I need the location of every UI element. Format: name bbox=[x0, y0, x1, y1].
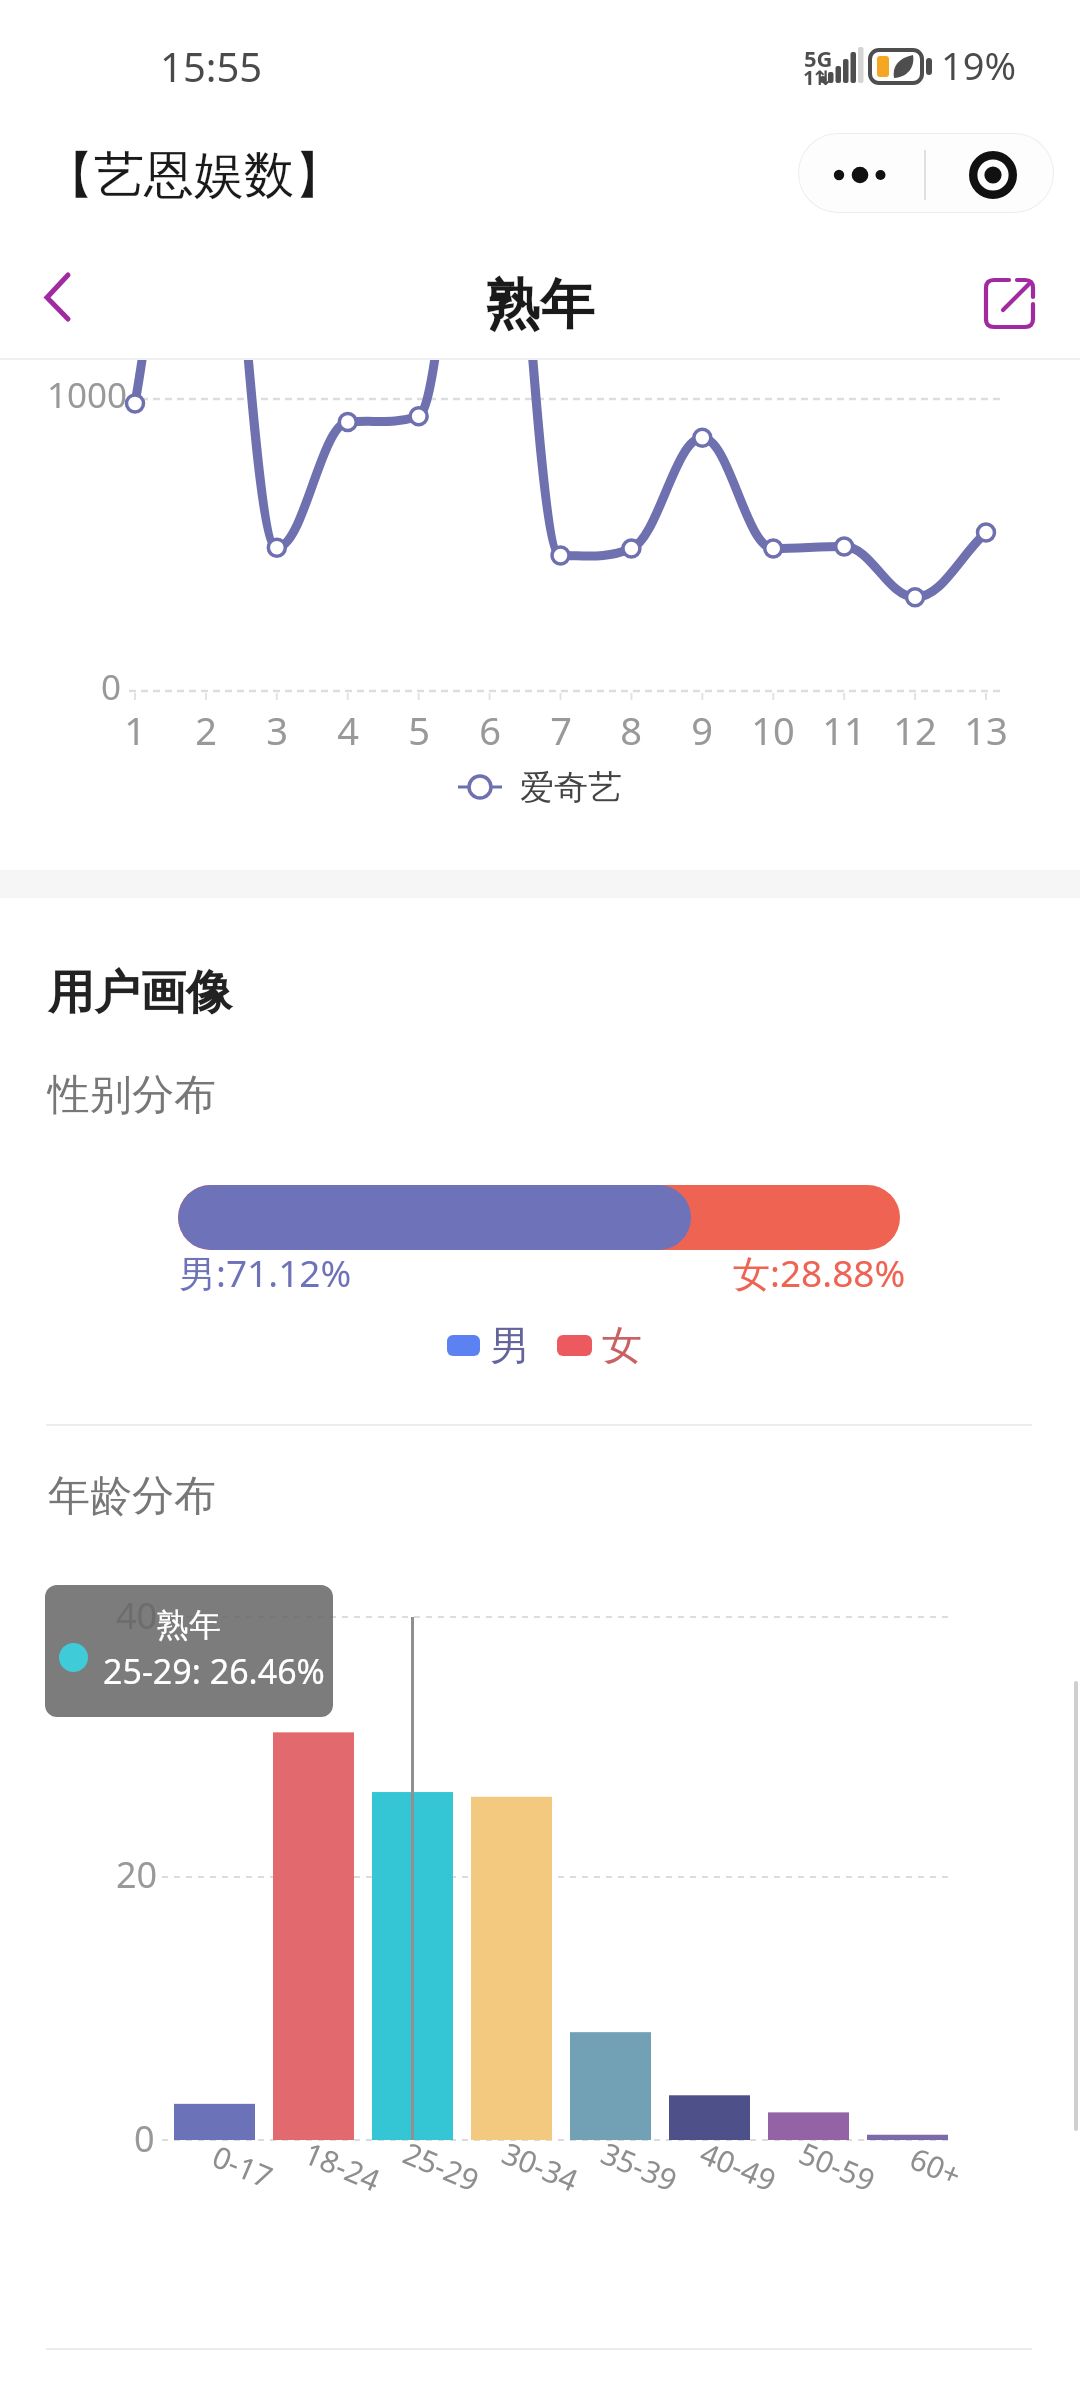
staticText: 20 bbox=[116, 1850, 158, 1899]
staticText: 0 bbox=[134, 2114, 155, 2163]
staticText: 女:28.88% bbox=[733, 1247, 906, 1298]
staticText: 25-29 bbox=[397, 2132, 486, 2201]
staticText: 2 bbox=[166, 704, 246, 756]
staticText: 1 bbox=[95, 704, 175, 756]
button[interactable]: 男 bbox=[447, 1320, 642, 1370]
staticText: 女 bbox=[602, 1320, 642, 1370]
staticText: 男:71.12% bbox=[179, 1247, 352, 1298]
staticText: 3 bbox=[237, 704, 317, 756]
staticText: 30-34 bbox=[496, 2132, 585, 2201]
staticText: 8 bbox=[591, 704, 671, 756]
staticText: 50-59 bbox=[793, 2132, 882, 2201]
staticText: 4 bbox=[308, 704, 388, 756]
staticText: 1⇅ bbox=[803, 64, 832, 91]
staticText: 0-17 bbox=[206, 2135, 280, 2197]
staticText: 5 bbox=[379, 704, 459, 756]
staticText: 熟年 bbox=[486, 271, 594, 339]
staticText: 【艺恩娱数】 bbox=[44, 144, 344, 207]
staticText: 0 bbox=[101, 663, 122, 711]
staticText: 男 bbox=[490, 1320, 530, 1370]
staticText: 25-29: 26.46% bbox=[103, 1648, 325, 1694]
staticText: 15:55 bbox=[160, 39, 263, 93]
staticText: 35-39 bbox=[595, 2132, 684, 2201]
staticText: 19% bbox=[941, 39, 1017, 91]
button[interactable]: Back bbox=[10, 250, 110, 360]
button[interactable] bbox=[798, 133, 1054, 213]
staticText: 性别分布 bbox=[48, 1069, 216, 1122]
staticText: 40-49 bbox=[694, 2132, 783, 2201]
button[interactable]: 爱奇艺 bbox=[456, 765, 622, 809]
staticText: 年龄分布 bbox=[48, 1470, 216, 1523]
staticText: 40 bbox=[116, 1591, 158, 1640]
staticText: 12 bbox=[875, 704, 955, 756]
staticText: 用户画像 bbox=[48, 964, 232, 1022]
staticText: 7 bbox=[521, 704, 601, 756]
button[interactable]: Share bbox=[956, 255, 1064, 355]
staticText: 爱奇艺 bbox=[520, 766, 622, 809]
staticText: 5G bbox=[804, 43, 833, 73]
staticText: 13 bbox=[946, 704, 1026, 756]
staticText: 10 bbox=[733, 704, 813, 756]
staticText: 11 bbox=[804, 704, 884, 756]
staticText: 60+ bbox=[904, 2137, 968, 2196]
staticText: 18-24 bbox=[298, 2132, 387, 2201]
staticText: 9 bbox=[662, 704, 742, 756]
staticText: 1000 bbox=[47, 371, 128, 419]
button[interactable] bbox=[178, 1185, 900, 1250]
staticText: 6 bbox=[450, 704, 530, 756]
staticText: 熟年 bbox=[157, 1605, 221, 1645]
